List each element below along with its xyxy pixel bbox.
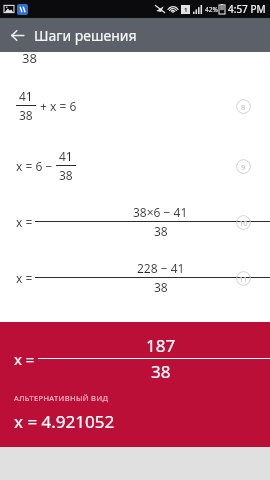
button[interactable]: Step 10 <box>236 215 251 230</box>
button[interactable]: Step 9 <box>236 159 251 174</box>
button[interactable]: x = <box>0 322 270 447</box>
staticText: x = 4.921052 <box>14 410 115 433</box>
staticText: 38 <box>19 107 33 123</box>
staticText: x = <box>16 270 33 286</box>
staticText: 38 <box>59 167 73 183</box>
staticText: 1 <box>184 6 188 14</box>
button[interactable]: Step 8 <box>236 99 251 114</box>
staticText: 4:57 PM <box>228 2 266 16</box>
staticText: Шаги решения <box>34 26 137 45</box>
staticText: 8 <box>241 102 246 112</box>
staticText: 38 <box>151 360 171 383</box>
staticText: 228 − 41 <box>137 260 185 276</box>
staticText: 9 <box>241 162 246 172</box>
staticText: + x = 6 <box>40 98 77 114</box>
button[interactable]: Back <box>0 18 34 52</box>
staticText: 41 <box>59 148 73 164</box>
button[interactable]: Step 11 <box>236 271 251 286</box>
staticText: 38 <box>154 279 168 295</box>
staticText: 38×6 − 41 <box>133 204 188 220</box>
staticText: 38 <box>22 49 37 67</box>
staticText: 187 <box>146 334 176 357</box>
staticText: 10 <box>239 218 248 228</box>
staticText: 41 <box>19 88 33 104</box>
staticText: x = <box>14 349 35 369</box>
staticText: 38 <box>154 223 168 239</box>
staticText: x = <box>16 214 33 230</box>
staticText: 42% <box>205 5 218 14</box>
staticText: x = 6 − <box>16 158 53 174</box>
staticText: АЛЬТЕРНАТИВНЫЙ ВИД <box>14 393 109 403</box>
staticText: 11 <box>239 274 248 284</box>
